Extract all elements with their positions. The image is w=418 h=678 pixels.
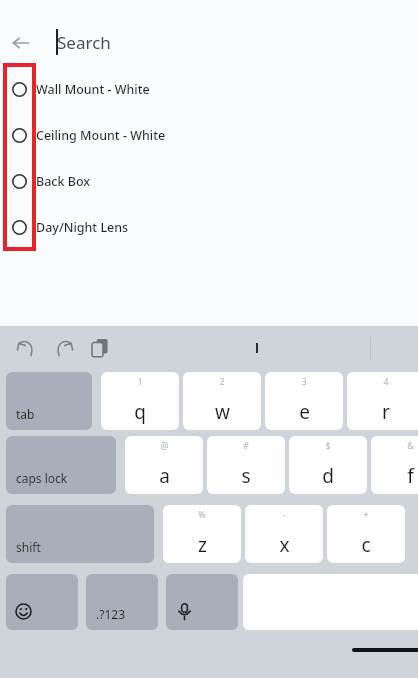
staticText: x [279,532,290,558]
staticText: Wall Mount - White [36,81,150,98]
staticText: 1 [137,375,143,387]
staticText: @ [160,439,169,451]
staticText: d [322,463,334,489]
staticText: f [407,463,414,489]
staticText: q [134,399,146,425]
staticText: Ceiling Mount - White [36,127,166,144]
button[interactable]: Emoji [6,574,78,630]
button[interactable]: & [371,436,418,494]
staticText: shift [16,539,41,555]
staticText: tab [16,406,35,422]
button[interactable]: Ceiling Mount - White [0,112,418,158]
staticText: Back Box [36,173,91,190]
button[interactable]: Day/Night Lens [0,204,418,250]
button[interactable]: caps lock [6,436,116,494]
staticText: Day/Night Lens [36,219,129,236]
staticText: 3 [301,375,307,387]
staticText: # [243,439,249,451]
staticText: - [283,508,286,520]
button[interactable]: % [163,505,241,563]
button[interactable]: 2 [183,372,261,430]
button[interactable]: Undo [13,334,41,362]
staticText: z [198,532,207,558]
staticText: r [382,399,390,425]
staticText: + [363,508,369,520]
staticText: a [159,463,170,489]
button[interactable]: @ [125,436,203,494]
staticText: $ [325,439,331,451]
button[interactable]: Wall Mount - White [0,66,418,112]
staticText: e [299,399,310,425]
button[interactable]: 3 [265,372,343,430]
staticText: 2 [219,375,225,387]
staticText: w [215,399,230,425]
button[interactable]: # [207,436,285,494]
button[interactable]: tab [6,372,92,430]
staticText: % [198,508,206,520]
button[interactable]: Back Box [0,158,418,204]
button[interactable]: Search [57,31,111,54]
button[interactable]: 1 [101,372,179,430]
button[interactable]: shift [6,505,154,563]
staticText: caps lock [16,470,68,486]
staticText: s [241,463,251,489]
button[interactable]: - [245,505,323,563]
button[interactable]: Back [8,30,34,56]
button[interactable]: + [327,505,405,563]
button[interactable]: .?123 [86,574,158,630]
button[interactable]: 4 [347,372,418,430]
staticText: 4 [383,375,389,387]
button[interactable]: Paste [86,334,114,362]
button[interactable]: $ [289,436,367,494]
button[interactable]: Redo [49,334,77,362]
button[interactable]: Voice input [166,574,238,630]
staticText: c [361,532,371,558]
staticText: .?123 [96,606,126,622]
staticText: & [407,439,414,451]
